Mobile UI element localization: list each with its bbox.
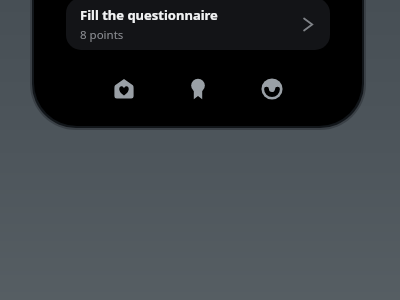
button[interactable]: Rewards bbox=[180, 71, 216, 107]
button[interactable]: Profile bbox=[254, 71, 290, 107]
button[interactable]: Home bbox=[106, 71, 142, 107]
staticText: 8 points bbox=[80, 27, 124, 43]
button[interactable]: Fill the questionnaire bbox=[66, 0, 330, 50]
staticText: Fill the questionnaire bbox=[80, 6, 218, 24]
